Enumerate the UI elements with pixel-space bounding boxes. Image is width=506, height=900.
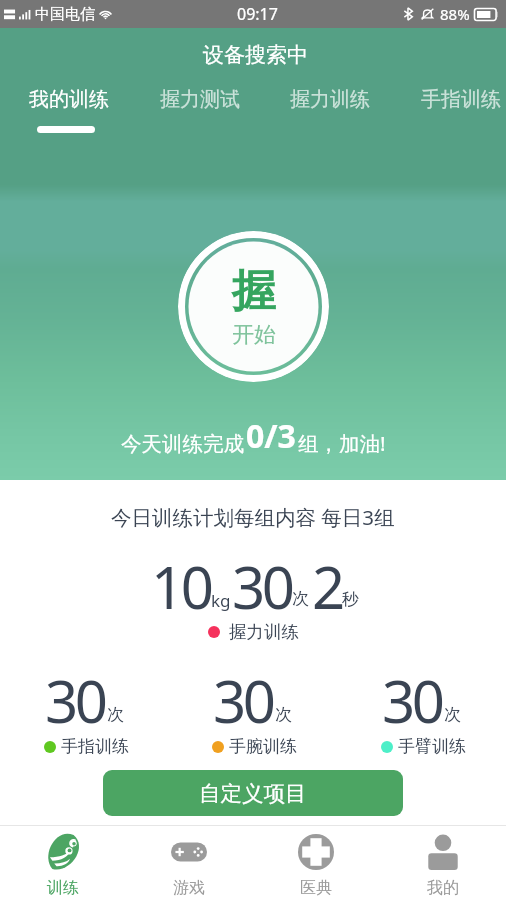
staticText: 0/3 [246,414,296,458]
staticText: 游戏 [173,878,205,898]
staticText: 握 [232,264,276,319]
staticText: 次 [444,704,461,725]
staticText: 医典 [300,878,332,898]
button[interactable]: Encyclopedia [252,826,379,900]
staticText: 我的训练 [29,87,109,112]
staticText: 手指训练 [421,87,501,112]
other: Training [43,832,83,872]
staticText: 30 [382,661,442,740]
staticText: 自定义项目 [199,780,307,807]
other: Profile [423,832,463,872]
staticText: 握力训练 [229,621,299,643]
staticText: 手指训练 [61,736,129,757]
staticText: 次 [275,704,292,725]
staticText: 组，加油! [298,429,386,457]
staticText: 次 [292,588,309,609]
other: Encyclopedia [296,832,336,872]
staticText: kg [211,589,231,612]
staticText: 握力测试 [160,87,240,112]
staticText: 今天训练完成 [121,431,244,457]
staticText: 30 [45,661,105,740]
staticText: 秒 [342,589,359,610]
button[interactable]: 握力测试 [134,80,265,130]
button[interactable]: Games [126,826,252,900]
staticText: 握力训练 [290,87,370,112]
staticText: 次 [107,704,124,725]
staticText: 30 [213,661,273,740]
staticText: 30 [232,547,292,626]
button[interactable]: 我的训练 [3,80,134,130]
staticText: 10 [151,547,211,626]
button[interactable]: Training [0,826,126,900]
button[interactable]: Profile [379,826,506,900]
staticText: 手臂训练 [398,736,466,757]
staticText: 2 [312,547,342,626]
staticText: 我的 [427,878,459,898]
staticText: 手腕训练 [229,736,297,757]
button[interactable]: 手指训练 [395,80,506,130]
button[interactable]: 握 [178,231,329,382]
staticText: 中国电信 [35,5,95,24]
staticText: 开始 [232,321,276,349]
button[interactable]: 自定义项目 [103,770,403,816]
staticText: 09:17 [237,3,278,25]
staticText: 88% [440,4,470,24]
staticText: 训练 [47,878,79,898]
other: Games [169,832,209,872]
staticText: 设备搜索中 [203,42,308,68]
button[interactable]: 握力训练 [264,80,395,130]
staticText: 今日训练计划每组内容 每日3组 [111,503,395,531]
